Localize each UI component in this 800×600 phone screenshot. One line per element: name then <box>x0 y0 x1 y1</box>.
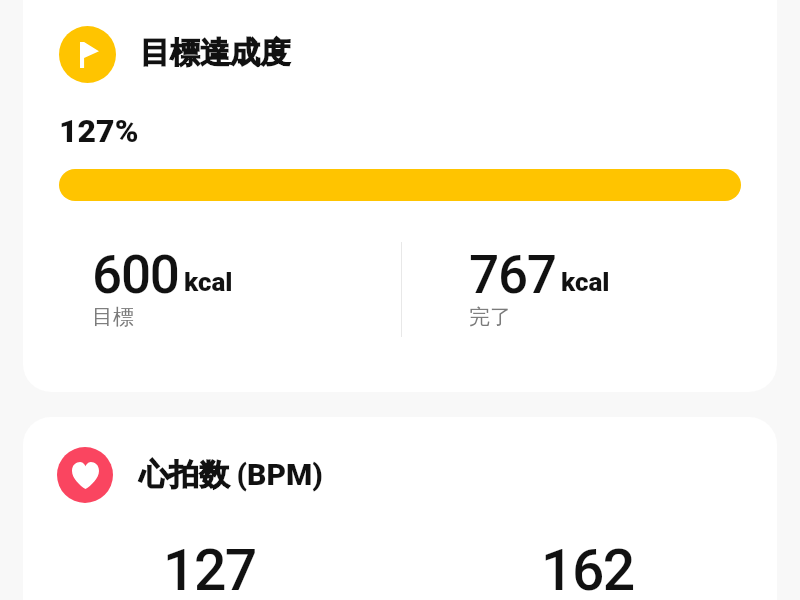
staticText: 600 <box>92 244 179 306</box>
staticText: 心拍数 (BPM) <box>139 456 323 494</box>
button[interactable]: Goal <box>23 0 777 392</box>
staticText: 完了 <box>469 304 511 330</box>
staticText: 目標達成度 <box>140 34 290 72</box>
staticText: 目標 <box>92 304 134 330</box>
other: Goal <box>59 26 116 83</box>
staticText: 767 <box>469 244 556 306</box>
staticText: 127% <box>59 112 139 150</box>
staticText: 127 <box>163 537 256 600</box>
button[interactable]: Heart rate <box>23 417 777 600</box>
other: Heart rate <box>57 447 113 503</box>
staticText: 162 <box>541 537 634 600</box>
staticText: kcal <box>561 267 610 297</box>
staticText: kcal <box>184 267 233 297</box>
